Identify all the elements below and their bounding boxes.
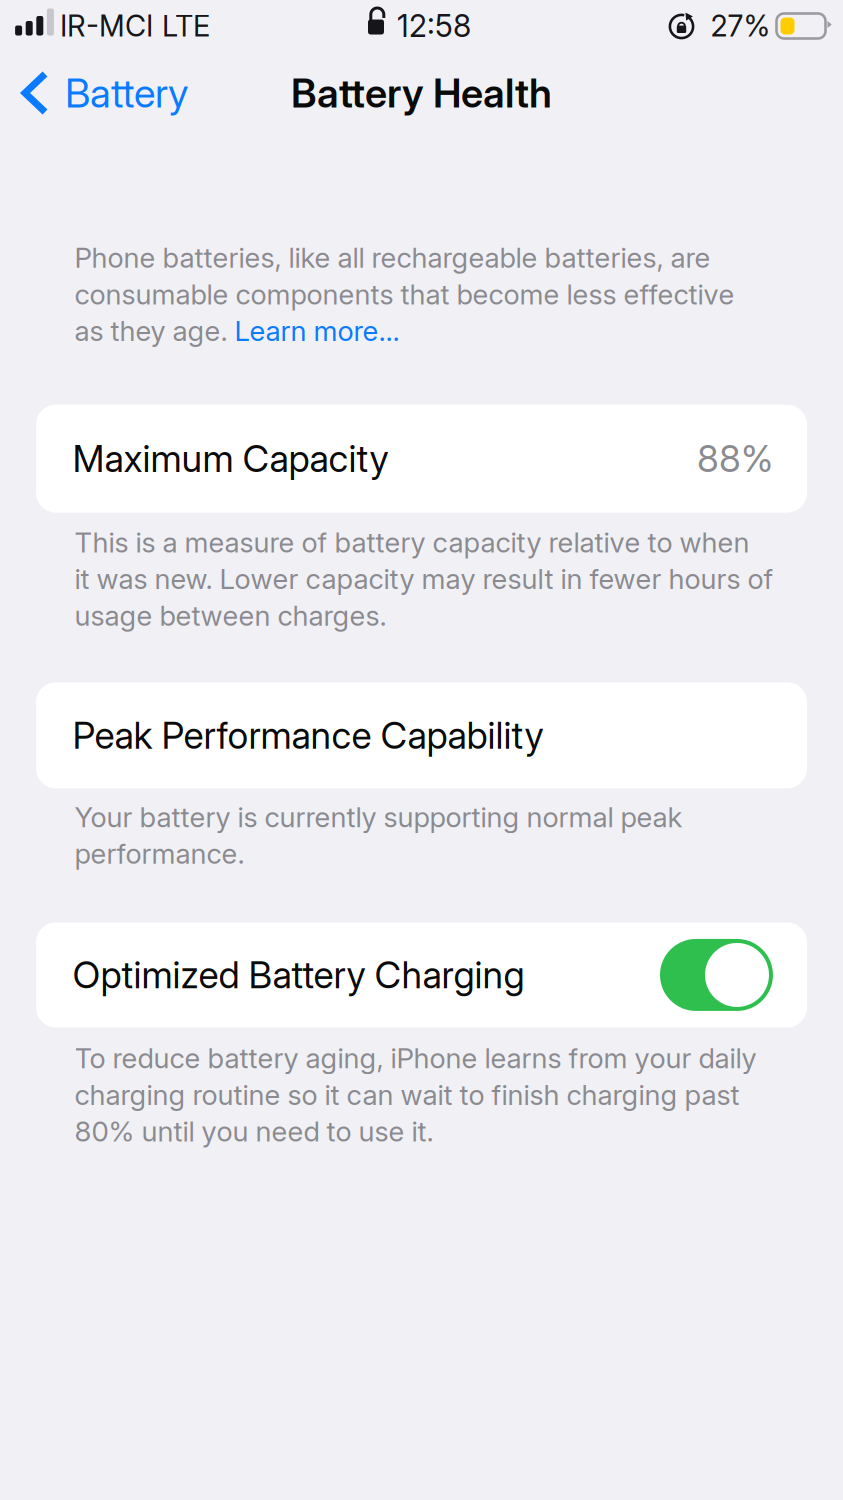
- staticText: usage between charges.: [74, 599, 386, 632]
- button[interactable]: Battery: [0, 60, 201, 126]
- staticText: This is a measure of battery capacity re…: [74, 526, 749, 559]
- staticText: Battery Health: [291, 69, 552, 117]
- button[interactable]: Maximum Capacity: [0, 405, 843, 513]
- staticText: 88%: [697, 436, 773, 481]
- staticText: 12:58: [397, 8, 471, 44]
- button[interactable]: Learn more...: [234, 314, 399, 348]
- staticText: To reduce battery aging, iPhone learns f…: [74, 1041, 756, 1075]
- staticText: IR-MCI: [60, 8, 153, 44]
- staticText: as they age.: [74, 314, 234, 348]
- staticText: Optimized Battery Charging: [72, 953, 524, 997]
- staticText: it was new. Lower capacity may result in…: [74, 562, 773, 596]
- staticText: 27%: [710, 8, 770, 44]
- staticText: Peak Performance Capability: [72, 713, 543, 758]
- staticText: 80% until you need to use it.: [74, 1115, 433, 1148]
- staticText: Maximum Capacity: [72, 436, 388, 481]
- staticText: performance.: [74, 837, 244, 870]
- staticText: Your battery is currently supporting nor…: [74, 800, 682, 834]
- button[interactable]: Optimized Battery Charging: [0, 922, 843, 1027]
- staticText: charging routine so it can wait to finis…: [74, 1078, 739, 1112]
- staticText: Learn more...: [234, 314, 399, 348]
- staticText: consumable components that become less e…: [74, 278, 734, 311]
- button[interactable]: Peak Performance Capability: [0, 682, 843, 788]
- staticText: LTE: [162, 8, 210, 44]
- staticText: Battery: [65, 69, 189, 117]
- staticText: Phone batteries, like all rechargeable b…: [74, 241, 710, 275]
